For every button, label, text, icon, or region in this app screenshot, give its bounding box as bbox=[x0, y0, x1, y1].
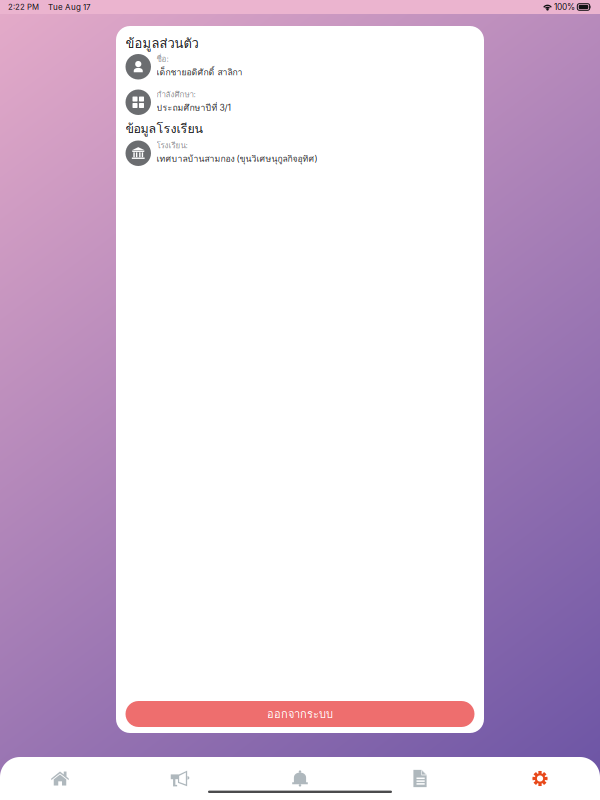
staticText: กำลังศึกษา: bbox=[156, 88, 195, 101]
staticText: ประถมศึกษาปีที่ 3/1 bbox=[156, 101, 231, 115]
staticText: โรงเรียน: bbox=[156, 139, 187, 152]
button[interactable]: Notifications bbox=[240, 757, 360, 800]
staticText: เทศบาลบ้านสามกอง (ขุนวิเศษนุกูลกิจอุทิศ) bbox=[156, 152, 317, 166]
button[interactable]: Announcements bbox=[120, 757, 240, 800]
staticText: ข้อมูลโรงเรียน bbox=[125, 119, 202, 138]
staticText: ข้อมูลส่วนตัว bbox=[125, 33, 198, 54]
staticText: เด็กชายอดิศักดิ์ สาลิกา bbox=[156, 65, 242, 79]
staticText: 2:22 PM bbox=[8, 2, 39, 12]
button[interactable]: Documents bbox=[360, 757, 480, 800]
staticText: ออกจากระบบ bbox=[267, 705, 333, 723]
staticText: Tue Aug 17 bbox=[48, 2, 91, 12]
button[interactable]: Settings bbox=[480, 757, 600, 800]
staticText: 100% bbox=[554, 2, 575, 12]
button[interactable]: Home bbox=[0, 757, 120, 800]
button[interactable]: ออกจากระบบ bbox=[125, 701, 474, 727]
staticText: ชื่อ: bbox=[156, 52, 168, 65]
